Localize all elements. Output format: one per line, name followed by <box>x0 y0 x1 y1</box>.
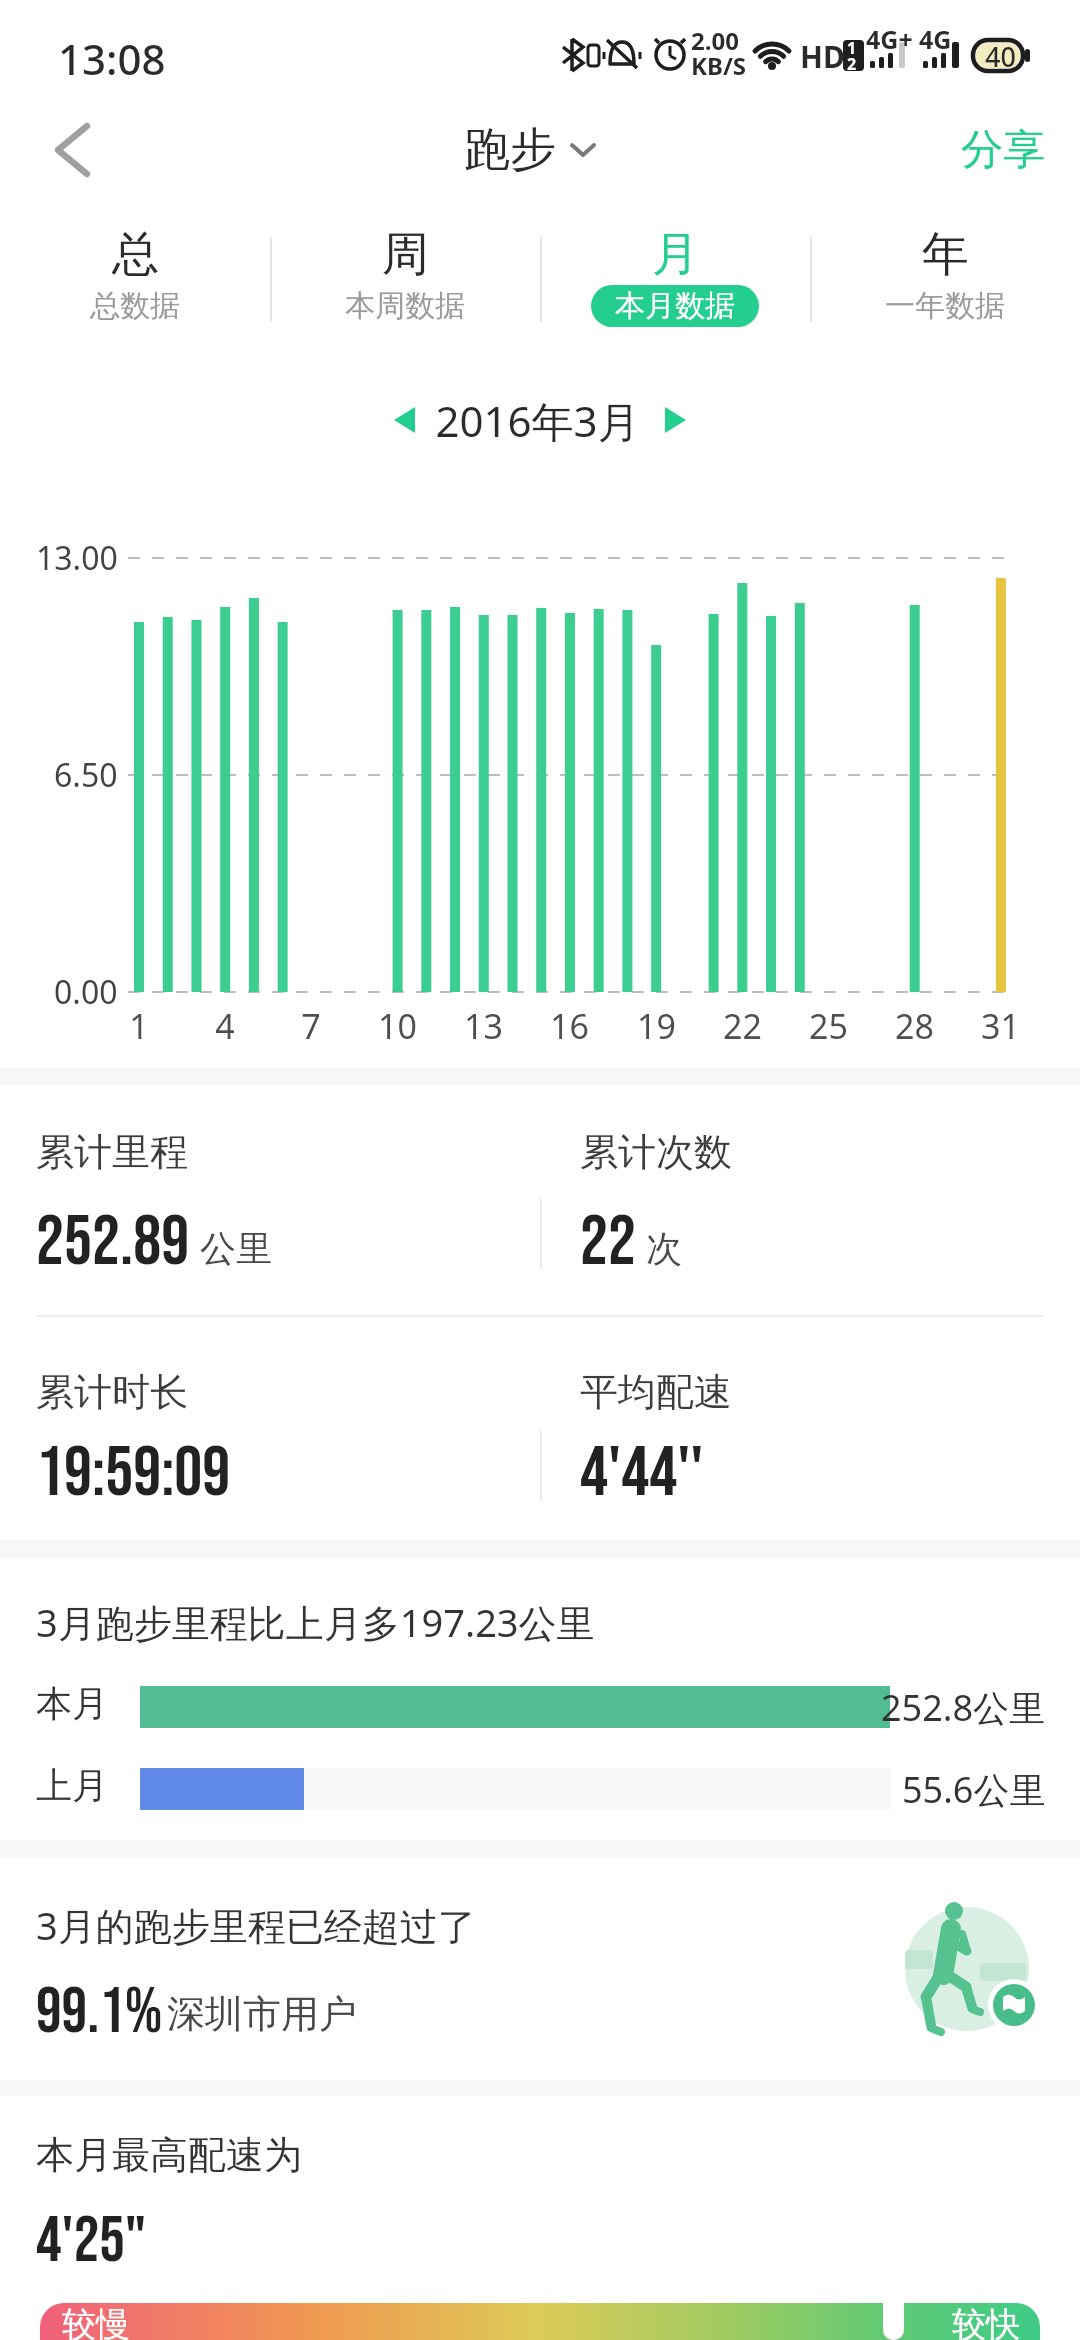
staticText: 较快 <box>952 2303 1020 2340</box>
staticText: 总 <box>112 225 159 284</box>
staticText: 0.00 <box>54 970 118 1014</box>
staticText: 13 <box>464 1003 503 1049</box>
staticText: 3月的跑步里程已经超过了 <box>36 1899 476 1951</box>
staticText: 上月 <box>36 1763 108 1808</box>
button[interactable] <box>30 110 110 190</box>
button[interactable] <box>662 406 688 436</box>
staticText: 13.00 <box>36 536 118 580</box>
staticText: 6.50 <box>54 753 118 797</box>
staticText: 19:59:09 <box>36 1432 231 1516</box>
button[interactable]: 月 <box>540 222 810 347</box>
staticText: 40 <box>985 38 1016 75</box>
staticText: 13:08 <box>58 30 166 87</box>
staticText: HD <box>800 36 845 77</box>
staticText: 2.00 <box>691 24 739 57</box>
button[interactable] <box>392 406 418 436</box>
button[interactable]: 总 <box>0 222 270 347</box>
staticText: 28 <box>895 1003 934 1049</box>
staticText: 一年数据 <box>885 287 1005 325</box>
staticText: 累计次数 <box>580 1128 732 1176</box>
staticText: 1 <box>129 1003 149 1049</box>
staticText: 4G+ <box>866 22 913 56</box>
staticText: 总数据 <box>90 287 180 325</box>
staticText: 本月数据 <box>615 287 735 325</box>
staticText: 月 <box>652 225 699 284</box>
staticText: 252.8公里 <box>881 1683 1046 1732</box>
staticText: KB/S <box>691 49 747 82</box>
staticText: 平均配速 <box>580 1368 732 1416</box>
staticText: 22 <box>580 1201 636 1285</box>
staticText: 16 <box>550 1003 589 1049</box>
staticText: 19 <box>637 1003 676 1049</box>
staticText: 次 <box>646 1226 682 1271</box>
staticText: 31 <box>981 1003 1020 1049</box>
staticText: 跑步 <box>464 121 556 179</box>
button[interactable]: 年 <box>810 222 1080 347</box>
staticText: 周 <box>382 225 429 284</box>
staticText: 本月最高配速为 <box>36 2131 302 2179</box>
staticText: 分享 <box>961 124 1045 177</box>
staticText: 10 <box>378 1003 417 1049</box>
staticText: 4'25" <box>36 2203 147 2280</box>
staticText: 252.89 <box>36 1201 190 1285</box>
staticText: 4'44'' <box>580 1432 704 1516</box>
staticText: 较慢 <box>62 2303 130 2340</box>
staticText: 公里 <box>200 1226 272 1271</box>
staticText: 7 <box>301 1003 321 1049</box>
button[interactable]: 周 <box>270 222 540 347</box>
staticText: 99.1% <box>36 1974 163 2051</box>
staticText: 本月 <box>36 1681 108 1726</box>
staticText: 累计里程 <box>36 1128 188 1176</box>
staticText: 年 <box>922 225 969 284</box>
button[interactable] <box>40 2303 1040 2340</box>
staticText: 4G <box>919 22 952 56</box>
staticText: 1 <box>847 37 857 59</box>
staticText: 22 <box>723 1003 762 1049</box>
staticText: 累计时长 <box>36 1368 188 1416</box>
staticText: 3月跑步里程比上月多197.23公里 <box>36 1596 595 1648</box>
staticText: 本周数据 <box>345 287 465 325</box>
staticText: 25 <box>809 1003 848 1049</box>
staticText: 2 <box>847 53 857 75</box>
button[interactable]: 跑步 <box>430 110 630 190</box>
staticText: 4 <box>215 1003 235 1049</box>
staticText: 2016年3月 <box>435 392 640 449</box>
staticText: 55.6公里 <box>902 1765 1046 1814</box>
staticText: 深圳市用户 <box>167 1990 357 2038</box>
button[interactable]: 分享 <box>945 110 1060 190</box>
